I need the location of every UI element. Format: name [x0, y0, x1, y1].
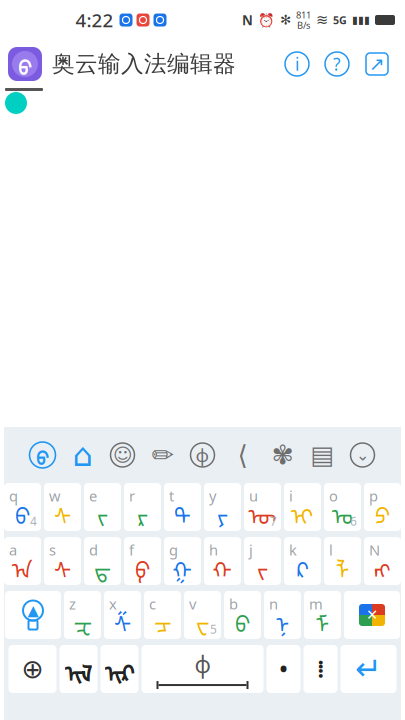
button[interactable]: Mongolian symbol one [59, 645, 97, 693]
staticText: ✾ [271, 440, 293, 470]
button[interactable]: Keyboard layout [302, 435, 342, 475]
staticText: 7 [270, 513, 277, 529]
staticText: ᠠ [12, 546, 33, 585]
staticText: ᠭ [172, 546, 192, 585]
staticText: ᠪ [18, 47, 32, 81]
button[interactable]: Settings [262, 435, 302, 475]
staticText: ᠳ [94, 546, 111, 585]
staticText: φ [195, 443, 209, 467]
staticText: ⌄ [356, 446, 369, 464]
staticText: ᠫ [375, 492, 390, 531]
button[interactable]: w [44, 483, 81, 531]
staticText: w [49, 486, 61, 505]
staticText: ᠩ [374, 546, 391, 585]
staticText: 4:22 [75, 8, 113, 32]
staticText: N [369, 540, 380, 559]
button[interactable]: g [164, 537, 201, 585]
button[interactable]: j [244, 537, 281, 585]
staticText: ᠴ [154, 600, 171, 639]
button[interactable]: e [84, 483, 121, 531]
button[interactable]: Home [62, 435, 102, 475]
staticText: ☺ [113, 444, 132, 466]
staticText: ᠰ [54, 492, 71, 531]
button[interactable]: Collapse keyboard [342, 435, 382, 475]
staticText: 5G [333, 13, 347, 27]
button[interactable]: Mongolian symbol two [100, 645, 138, 693]
button[interactable]: q [4, 483, 41, 531]
button[interactable]: Share [357, 50, 397, 78]
button[interactable]: Mongolian input [22, 435, 62, 475]
staticText: ↗ [369, 53, 385, 75]
staticText: ᠥ [248, 492, 276, 531]
button[interactable]: b [224, 591, 261, 639]
button[interactable]: N [364, 537, 401, 585]
button[interactable]: Handwriting [142, 435, 182, 475]
button[interactable]: d [84, 537, 121, 585]
button[interactable]: k [284, 537, 321, 585]
staticText: a [9, 540, 17, 559]
staticText: d [89, 540, 98, 559]
staticText: ? [333, 52, 341, 75]
button[interactable]: Help [317, 50, 357, 78]
staticText: ᠮ [315, 600, 329, 639]
staticText: s [49, 540, 56, 559]
button[interactable]: Punctuation [303, 645, 337, 693]
staticText: • [279, 655, 287, 683]
staticText: ᠣ [332, 492, 353, 531]
staticText: 奥云输入法编辑器 [52, 50, 236, 78]
button[interactable]: a [4, 537, 41, 585]
staticText: ᠪ [15, 492, 30, 531]
button[interactable]: v [184, 591, 221, 639]
button[interactable]: Shift [5, 591, 61, 639]
button[interactable]: Emoji [102, 435, 142, 475]
staticText: ᠵ [257, 546, 268, 585]
staticText: ᠪ [235, 600, 250, 639]
button[interactable]: l [324, 537, 361, 585]
staticText: ᠵ [97, 492, 108, 531]
button[interactable]: n [264, 591, 301, 639]
staticText: ⌂ [72, 437, 92, 473]
staticText: ⊕ [21, 654, 43, 684]
button[interactable]: t [164, 483, 201, 531]
staticText: v [189, 594, 196, 613]
button[interactable]: c [144, 591, 181, 639]
button[interactable]: Voice input [182, 435, 222, 475]
button[interactable]: s [44, 537, 81, 585]
button[interactable]: Period [266, 645, 300, 693]
staticText: ▮▮▮ [352, 14, 370, 26]
staticText: B/s [297, 19, 310, 31]
button[interactable]: m [304, 591, 341, 639]
staticText: i [295, 52, 299, 75]
button[interactable]: y [204, 483, 241, 531]
staticText: ▲ [27, 602, 38, 619]
button[interactable]: u [244, 483, 281, 531]
button[interactable]: Info [277, 50, 317, 78]
staticText: k [289, 540, 297, 559]
button[interactable]: i [284, 483, 321, 531]
button[interactable]: p [364, 483, 401, 531]
staticText: ✏︎ [151, 440, 173, 470]
staticText: N [242, 11, 253, 29]
button[interactable]: Space [141, 645, 263, 693]
staticText: ᠲ [174, 492, 191, 531]
staticText: l [329, 540, 333, 559]
staticText: b [229, 594, 238, 613]
button[interactable]: Switch language [8, 645, 56, 693]
button[interactable]: z [64, 591, 101, 639]
button[interactable]: Share [222, 435, 262, 475]
button[interactable]: Return [340, 645, 396, 693]
button[interactable]: h [204, 537, 241, 585]
staticText: j [249, 540, 253, 559]
staticText: i [289, 486, 293, 505]
staticText: ᠷ [137, 492, 148, 531]
staticText: ᠱ [114, 600, 131, 639]
staticText: c [149, 594, 156, 613]
button[interactable]: x [104, 591, 141, 639]
staticText: ᠬ [212, 546, 232, 585]
staticText: ᠹ [135, 546, 150, 585]
button[interactable]: f [124, 537, 161, 585]
button[interactable]: r [124, 483, 161, 531]
staticText: f [129, 540, 134, 559]
button[interactable]: Delete [344, 591, 400, 639]
button[interactable]: o [324, 483, 361, 531]
